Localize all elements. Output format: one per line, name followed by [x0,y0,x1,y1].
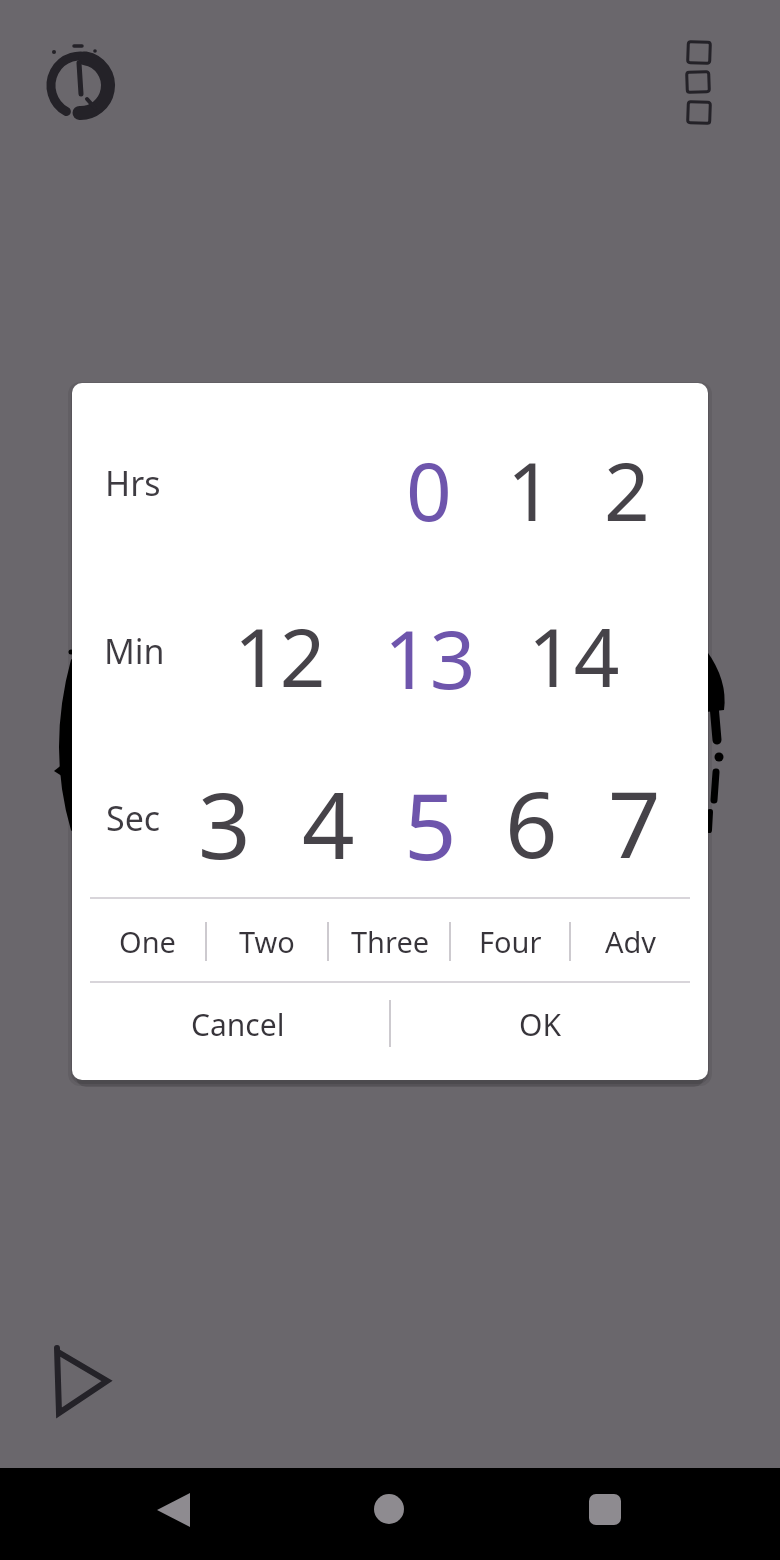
staticText: Three [351,922,430,961]
button[interactable] [346,1470,432,1558]
staticText: Adv [605,922,657,961]
staticText: 13 [384,603,476,712]
staticText: 3 [198,761,251,886]
staticText: Two [239,922,295,961]
staticText: Four [479,922,542,961]
button[interactable] [130,1470,216,1558]
button[interactable]: 1 [485,429,575,549]
staticText: One [119,922,176,961]
button[interactable]: 12 [215,595,345,715]
button[interactable]: 2 [582,429,672,549]
staticText: 12 [234,601,326,710]
button[interactable] [562,1470,648,1558]
button[interactable] [676,32,721,132]
button[interactable] [45,40,120,130]
staticText: 14 [528,601,620,710]
staticText: 4 [302,761,355,886]
staticText: 2 [604,435,650,544]
staticText: 5 [404,762,457,887]
staticText: Min [104,628,165,674]
staticText: 6 [505,760,558,885]
button[interactable]: OK [410,984,670,1064]
staticText: OK [519,1004,561,1045]
button[interactable]: Three [334,903,446,979]
button[interactable]: Adv [572,903,690,979]
staticText: Cancel [191,1004,285,1045]
staticText: Sec [106,795,161,841]
button[interactable]: 13 [365,597,495,717]
button[interactable]: 14 [509,595,639,715]
button[interactable]: 5 [384,759,476,889]
button[interactable]: Four [454,903,566,979]
button[interactable]: Two [211,903,323,979]
button[interactable]: 0 [384,429,474,549]
staticText: 7 [608,760,661,885]
staticText: 0 [406,435,452,544]
button[interactable] [40,1335,125,1430]
staticText: Hrs [105,460,161,506]
button[interactable]: 6 [485,757,577,887]
button[interactable]: 7 [588,757,680,887]
staticText: 1 [507,435,553,544]
button[interactable]: 4 [282,758,374,888]
button[interactable]: Cancel [108,984,368,1064]
button[interactable]: One [88,903,206,979]
button[interactable]: 3 [178,758,270,888]
